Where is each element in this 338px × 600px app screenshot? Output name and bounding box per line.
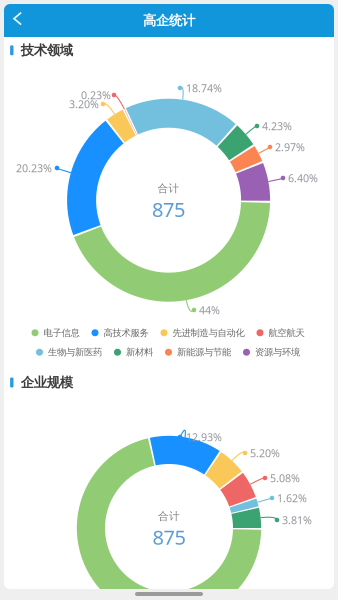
- staticText: 新能源与节能: [177, 346, 231, 358]
- staticText: 2.97%: [275, 140, 305, 154]
- staticText: 电子信息: [43, 327, 79, 338]
- staticText: 875: [152, 524, 185, 550]
- staticText: 合计: [158, 182, 180, 195]
- staticText: 4.23%: [262, 119, 292, 133]
- staticText: 高企统计: [143, 12, 195, 29]
- staticText: 资源与环境: [255, 346, 300, 358]
- staticText: 5.20%: [250, 446, 280, 460]
- button[interactable]: 返回: [4, 4, 36, 37]
- staticText: 12.93%: [186, 430, 222, 444]
- staticText: 6.40%: [288, 171, 318, 185]
- staticText: 合计: [158, 510, 180, 523]
- staticText: 18.74%: [186, 81, 222, 95]
- staticText: 1.62%: [277, 491, 307, 505]
- staticText: 生物与新医药: [48, 346, 102, 358]
- staticText: 航空航天: [268, 327, 304, 338]
- staticText: 3.20%: [69, 97, 99, 111]
- staticText: 20.23%: [16, 161, 52, 175]
- staticText: 技术领域: [21, 42, 73, 58]
- staticText: 新材料: [126, 346, 153, 358]
- staticText: 高技术服务: [103, 327, 148, 338]
- staticText: 875: [152, 196, 185, 223]
- staticText: 3.81%: [282, 513, 312, 527]
- staticText: 44%: [199, 303, 220, 317]
- staticText: 企业规模: [21, 374, 73, 391]
- staticText: 先进制造与自动化: [172, 327, 244, 338]
- staticText: 5.08%: [270, 471, 300, 485]
- staticText: 0.23%: [81, 88, 111, 102]
